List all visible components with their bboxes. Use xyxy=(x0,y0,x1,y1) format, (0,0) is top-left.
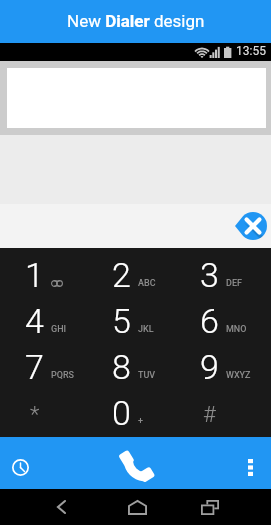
button[interactable]: 7 xyxy=(4,342,91,388)
staticText: WXYZ xyxy=(226,370,251,381)
button[interactable]: 4 xyxy=(4,296,91,342)
button[interactable]: Call xyxy=(101,437,171,489)
button[interactable]: Back xyxy=(41,489,81,525)
staticText: DEF xyxy=(226,278,242,289)
staticText: 7 xyxy=(25,347,44,387)
button[interactable]: Home xyxy=(117,489,157,525)
staticText: 6 xyxy=(200,301,219,341)
button[interactable]: Call history xyxy=(0,437,41,489)
staticText: PQRS xyxy=(51,370,75,381)
staticText: ABC xyxy=(138,278,156,289)
staticText: GHI xyxy=(51,324,67,335)
staticText: 5 xyxy=(112,301,131,341)
button[interactable]: 0 xyxy=(91,388,179,434)
staticText: * xyxy=(30,402,40,428)
staticText: + xyxy=(138,416,143,427)
staticText: 3 xyxy=(200,255,219,295)
staticText: 4 xyxy=(25,301,44,341)
button[interactable]: 6 xyxy=(179,296,267,342)
button[interactable]: 3 xyxy=(179,250,267,296)
staticText: JKL xyxy=(138,324,154,335)
staticText: 9 xyxy=(200,347,219,387)
button[interactable]: 1 xyxy=(4,250,91,296)
button[interactable]: 9 xyxy=(179,342,267,388)
staticText: 0 xyxy=(112,393,131,433)
button[interactable]: Recent apps xyxy=(190,489,230,525)
staticText: New Dialer design xyxy=(67,11,205,31)
button[interactable]: 8 xyxy=(91,342,179,388)
staticText: # xyxy=(203,402,216,428)
staticText: 13:55 xyxy=(236,44,266,58)
button[interactable]: Backspace xyxy=(235,212,267,240)
staticText: MNO xyxy=(226,324,247,335)
button[interactable]: * xyxy=(4,388,91,434)
staticText: 8 xyxy=(112,347,131,387)
button[interactable]: # xyxy=(179,388,267,434)
staticText: 2 xyxy=(112,255,131,295)
staticText: 1 xyxy=(25,255,44,295)
button[interactable]: More options xyxy=(230,437,271,489)
staticText: TUV xyxy=(138,370,156,381)
button[interactable]: 5 xyxy=(91,296,179,342)
button[interactable]: 2 xyxy=(91,250,179,296)
